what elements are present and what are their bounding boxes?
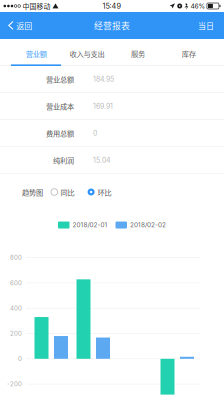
staticText: 0: [18, 355, 22, 362]
staticText: 400: [10, 304, 22, 312]
staticText: 营业成本: [46, 101, 74, 111]
staticText: 200: [10, 330, 22, 337]
staticText: 2018/02-01: [72, 221, 107, 229]
staticText: 800: [10, 254, 22, 261]
button[interactable]: 同比: [43, 183, 75, 201]
staticText: 169.91: [93, 102, 113, 110]
button[interactable]: 环比: [75, 183, 112, 201]
staticText: 15.04: [93, 156, 110, 164]
staticText: 2018/02-02: [130, 221, 166, 229]
staticText: 经营报表: [94, 19, 130, 32]
button[interactable]: 库存: [163, 41, 214, 66]
staticText: 营业总额: [46, 74, 74, 84]
staticText: 184.95: [93, 75, 114, 83]
staticText: -200: [7, 380, 22, 388]
button[interactable]: 收入与支出: [62, 41, 112, 66]
staticText: 库存: [182, 48, 196, 59]
staticText: 服务: [131, 48, 145, 59]
button[interactable]: 当日: [190, 12, 224, 39]
button[interactable]: 服务: [112, 41, 163, 66]
staticText: 纯利润: [53, 155, 74, 165]
staticText: 返回: [16, 20, 32, 31]
staticText: 收入与支出: [70, 48, 105, 59]
staticText: 46%: [188, 2, 205, 10]
staticText: 营业额: [26, 48, 47, 59]
staticText: 15:49: [102, 2, 121, 10]
button[interactable]: 营业额: [11, 41, 62, 66]
staticText: 环比: [98, 187, 112, 197]
staticText: 600: [10, 279, 22, 287]
staticText: 趋势图: [22, 187, 43, 197]
staticText: [182, 3, 184, 9]
staticText: 费用总额: [46, 128, 74, 138]
staticText: 同比: [61, 187, 75, 197]
staticText: 0: [93, 129, 97, 137]
button[interactable]: 返回: [0, 12, 38, 39]
staticText: 当日: [198, 20, 214, 31]
staticText: 中国移动: [20, 1, 52, 11]
